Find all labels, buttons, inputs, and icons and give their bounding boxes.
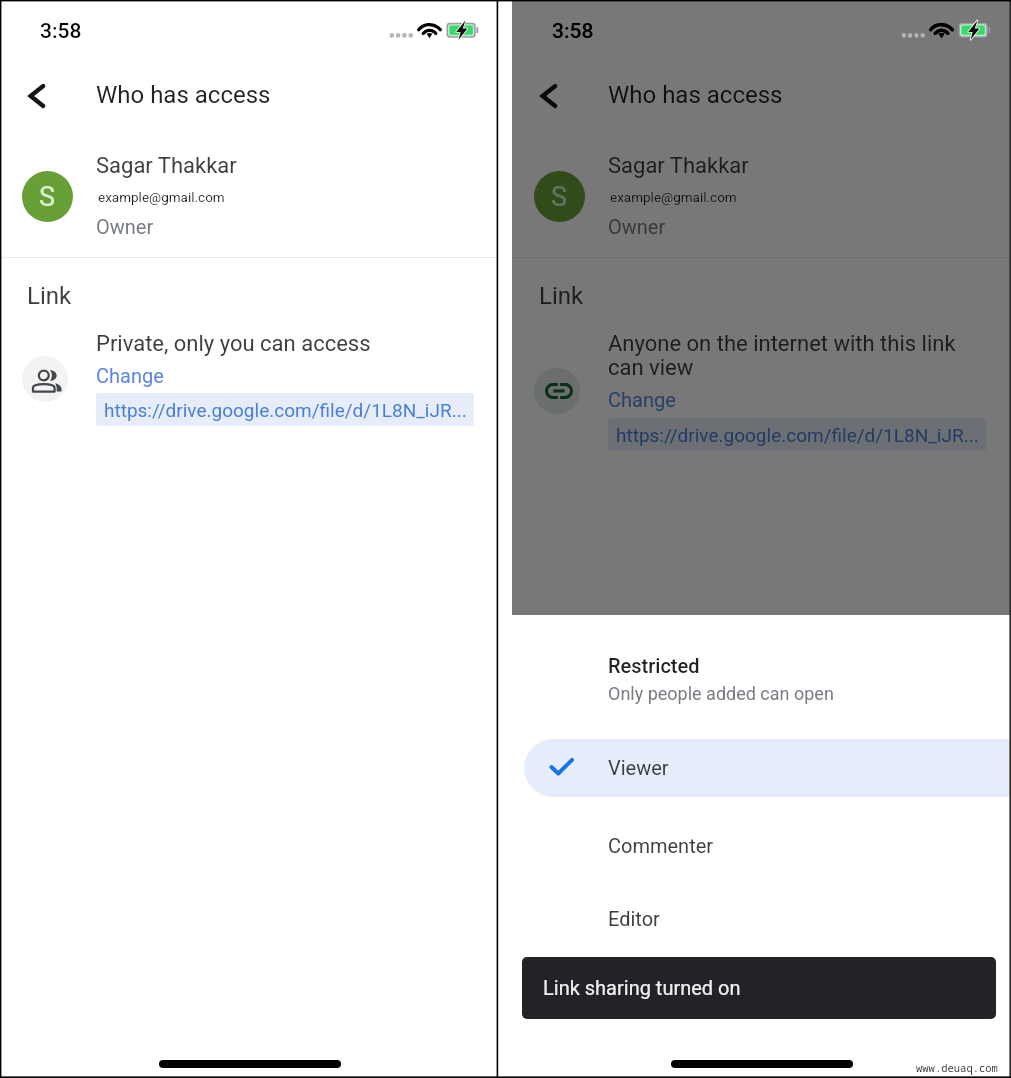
staticText: 3:58 bbox=[552, 19, 594, 44]
staticText: S bbox=[551, 181, 568, 213]
button[interactable]: Change bbox=[96, 364, 164, 387]
button[interactable]: Link sharing bbox=[534, 368, 580, 414]
staticText: Viewer bbox=[608, 756, 669, 779]
staticText: Private, only you can access bbox=[96, 331, 371, 357]
staticText: Sagar Thakkar bbox=[608, 153, 749, 179]
button[interactable]: Change bbox=[608, 388, 676, 411]
staticText: https://drive.google.com/file/d/1L8N_iJR… bbox=[104, 399, 467, 421]
button[interactable]: Commenter bbox=[512, 815, 1010, 869]
button[interactable]: https://drive.google.com/file/d/1L8N_iJR… bbox=[608, 418, 986, 451]
staticText: Link bbox=[27, 282, 72, 310]
staticText: S bbox=[39, 181, 56, 213]
staticText: example@gmail.com bbox=[610, 189, 737, 205]
staticText: Link bbox=[539, 282, 584, 310]
staticText: Only people added can open bbox=[608, 683, 834, 704]
staticText: Commenter bbox=[608, 834, 714, 857]
staticText: 3:58 bbox=[40, 19, 82, 44]
button[interactable]: Private bbox=[22, 356, 68, 402]
staticText: Who has access bbox=[96, 81, 271, 109]
staticText: Anyone on the internet with this link ca… bbox=[608, 331, 956, 380]
staticText: Owner bbox=[608, 215, 666, 238]
staticText: Restricted bbox=[608, 654, 700, 677]
staticText: https://drive.google.com/file/d/1L8N_iJR… bbox=[616, 424, 979, 446]
staticText: Change bbox=[608, 388, 676, 411]
button[interactable]: Editor bbox=[512, 888, 1010, 942]
staticText: Who has access bbox=[608, 81, 783, 109]
staticText: Editor bbox=[608, 907, 660, 930]
staticText: Owner bbox=[96, 215, 154, 238]
button[interactable]: Viewer bbox=[524, 739, 1011, 797]
button[interactable]: Back bbox=[528, 74, 572, 118]
staticText: Change bbox=[96, 364, 164, 387]
staticText: Link sharing turned on bbox=[543, 976, 741, 999]
staticText: 3:58 bbox=[552, 19, 594, 44]
button[interactable]: https://drive.google.com/file/d/1L8N_iJR… bbox=[96, 393, 474, 426]
button[interactable]: Restricted bbox=[608, 654, 834, 704]
staticText: www.deuaq.com bbox=[916, 1061, 998, 1075]
button[interactable]: Back bbox=[16, 74, 60, 118]
staticText: example@gmail.com bbox=[98, 189, 225, 205]
staticText: Sagar Thakkar bbox=[96, 153, 237, 179]
